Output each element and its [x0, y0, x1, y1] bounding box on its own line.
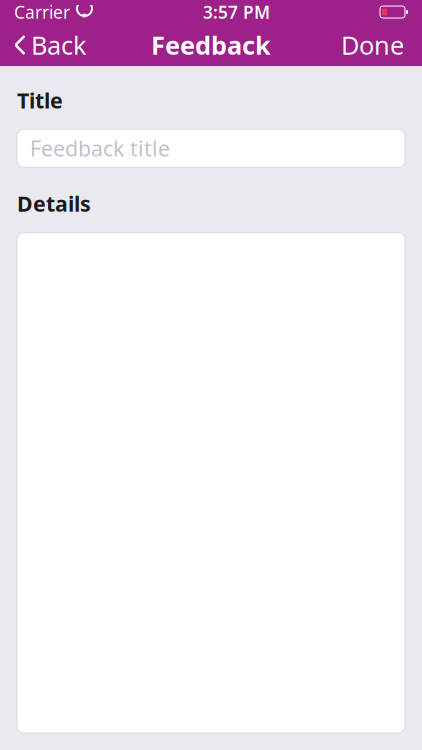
staticText: Feedback title — [30, 134, 170, 162]
button[interactable]: Done — [323, 24, 422, 66]
staticText: Done — [341, 28, 404, 62]
button[interactable]: Feedback title — [17, 129, 405, 167]
staticText: Feedback — [151, 28, 271, 62]
button[interactable]: Back — [0, 24, 101, 66]
staticText: Carrier — [14, 0, 70, 23]
staticText: Details — [17, 189, 91, 218]
staticText: Title — [17, 86, 63, 114]
staticText: 3:57 PM — [203, 0, 270, 23]
staticText: Back — [31, 28, 87, 62]
